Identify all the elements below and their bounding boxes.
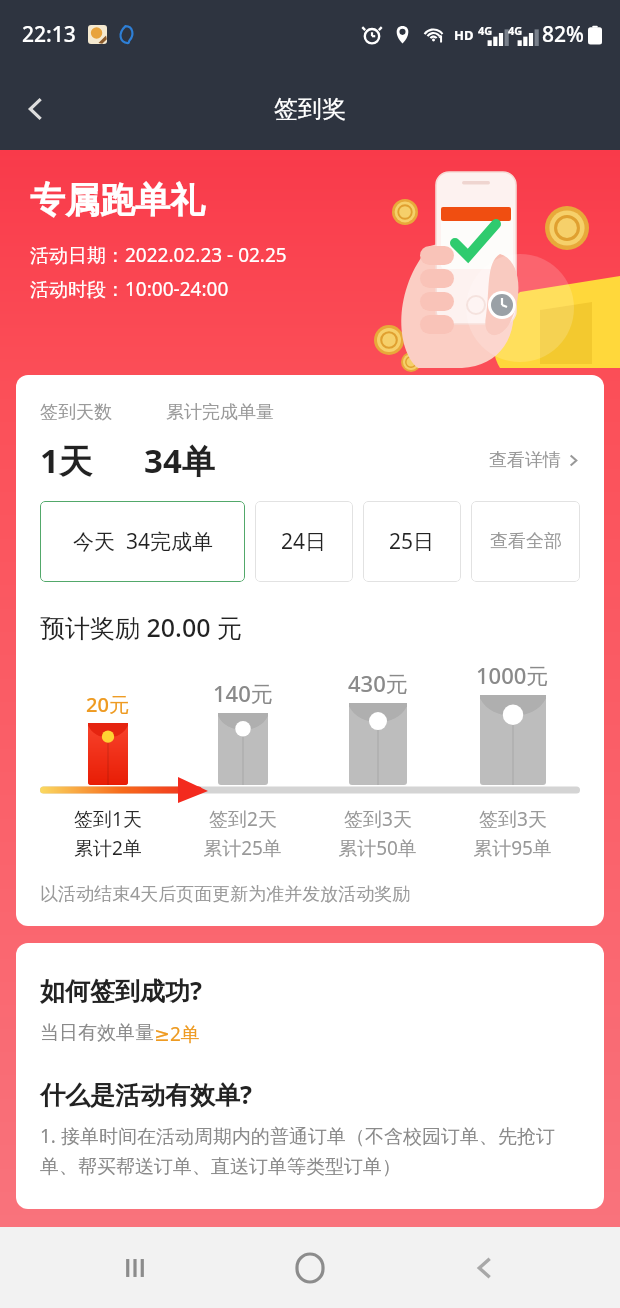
staticText: 专属跑单礼 <box>30 178 205 222</box>
staticText: 预计奖励 20.00 元 <box>40 610 243 644</box>
button[interactable]: Back <box>8 81 64 137</box>
staticText: 签到3天 <box>344 806 412 832</box>
staticText: 什么是活动有效单? <box>40 1077 252 1111</box>
staticText: 82% <box>542 20 584 49</box>
staticText: 签到1天 <box>74 806 142 832</box>
button[interactable]: Home <box>275 1233 345 1303</box>
staticText: 活动日期：2022.02.23 - 02.25 <box>30 242 287 268</box>
button[interactable]: 查看详情 <box>489 443 580 478</box>
button[interactable]: 25日 <box>363 501 461 582</box>
staticText: 累计25单 <box>203 835 282 861</box>
button[interactable]: 今天 34完成单 <box>40 501 245 582</box>
staticText: 活动时段：10:00-24:00 <box>30 276 229 302</box>
staticText: 140元 <box>213 678 273 708</box>
staticText: 签到2天 <box>209 806 277 832</box>
button[interactable]: Back <box>450 1227 520 1308</box>
staticText: HD <box>454 26 474 44</box>
staticText: 累计50单 <box>338 835 417 861</box>
button[interactable]: 24日 <box>255 501 353 582</box>
staticText: 查看详情 <box>489 449 561 472</box>
staticText: 20元 <box>86 691 129 718</box>
staticText: 查看全部 <box>490 530 562 553</box>
staticText: 如何签到成功? <box>40 973 202 1007</box>
staticText: 1000元 <box>476 660 549 690</box>
button[interactable]: 查看全部 <box>471 501 580 582</box>
staticText: 25日 <box>389 527 435 556</box>
staticText: 累计95单 <box>473 835 552 861</box>
staticText: 1天 <box>40 438 92 483</box>
staticText: 22:13 <box>22 20 76 49</box>
staticText: 以活动结束4天后页面更新为准并发放活动奖励 <box>40 881 411 906</box>
staticText: 累计2单 <box>74 835 142 861</box>
staticText: 签到天数 <box>40 401 112 424</box>
staticText: 4G <box>478 23 493 38</box>
staticText: 1. 接单时间在活动周期内的普通订单（不含校园订单、先抢订单、帮买帮送订单、直送… <box>40 1123 584 1179</box>
button[interactable]: Recents <box>100 1227 170 1308</box>
staticText: 34单 <box>144 438 215 483</box>
staticText: ≥2单 <box>154 1021 200 1047</box>
staticText: 4G <box>508 23 523 38</box>
staticText: 24日 <box>281 527 327 556</box>
staticText: 签到奖 <box>274 94 346 124</box>
staticText: 当日有效单量 <box>40 1021 154 1045</box>
staticText: 累计完成单量 <box>166 401 274 424</box>
staticText: 签到3天 <box>479 806 547 832</box>
staticText: 今天 34完成单 <box>73 527 213 556</box>
staticText: 430元 <box>348 668 408 698</box>
